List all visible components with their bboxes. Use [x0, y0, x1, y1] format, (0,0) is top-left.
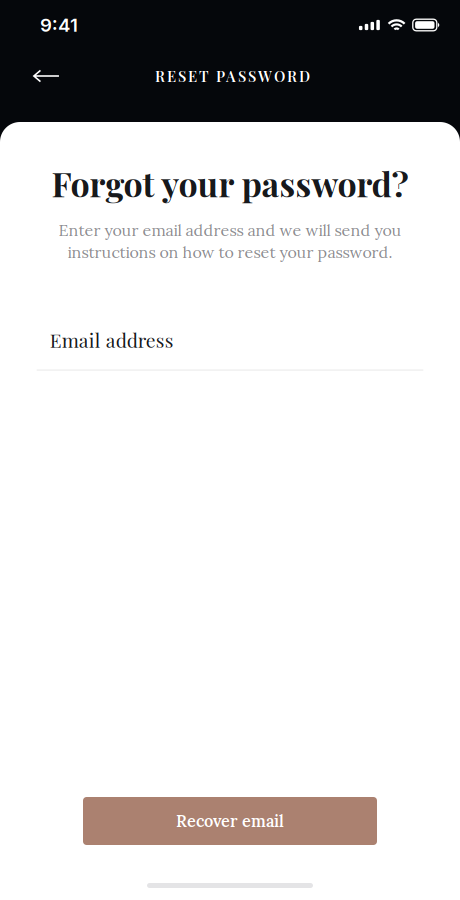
- staticText: 9:41: [40, 14, 78, 36]
- button[interactable]: Back: [24, 54, 68, 98]
- staticText: RESET PASSWORD: [155, 66, 310, 86]
- staticText: Enter your email address and we will sen…: [58, 220, 401, 240]
- staticText: Email address: [50, 327, 174, 353]
- staticText: Forgot your password?: [51, 160, 408, 206]
- staticText: Recover email: [176, 811, 284, 831]
- button[interactable]: Recover email: [83, 797, 377, 845]
- staticText: instructions on how to reset your passwo…: [67, 242, 392, 262]
